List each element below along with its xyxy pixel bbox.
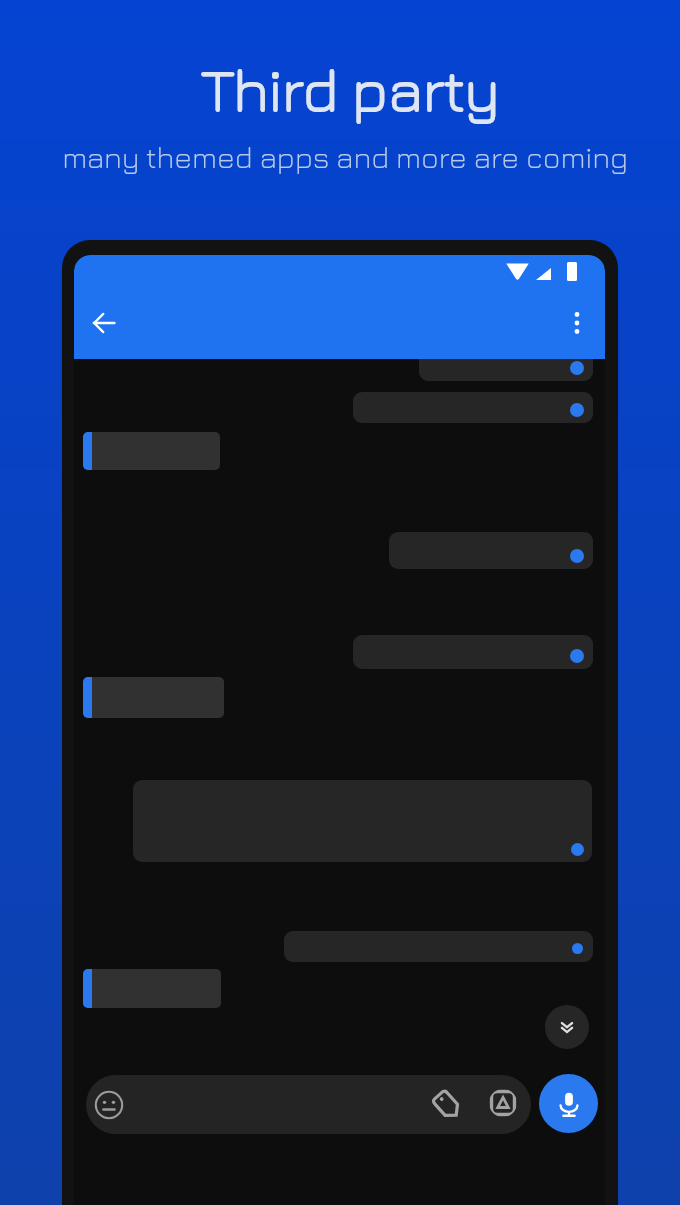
button[interactable]	[419, 340, 593, 381]
button[interactable]	[284, 931, 593, 962]
staticText: Third party	[201, 53, 500, 124]
button[interactable]	[353, 392, 593, 423]
button[interactable]	[83, 432, 220, 470]
button[interactable]: Attach	[431, 1089, 463, 1121]
button[interactable]	[353, 635, 593, 669]
button[interactable]: Voice message	[539, 1074, 598, 1133]
button[interactable]	[83, 677, 224, 718]
button[interactable]	[133, 780, 592, 862]
button[interactable]: Back	[80, 299, 128, 347]
button[interactable]: Emoji	[94, 1090, 124, 1120]
button[interactable]: Scroll to bottom	[545, 1005, 589, 1049]
button[interactable]: Camera	[489, 1089, 517, 1117]
button[interactable]: More options	[555, 301, 599, 345]
button[interactable]	[389, 532, 593, 569]
button[interactable]	[83, 969, 221, 1008]
button[interactable]: Emoji	[86, 1075, 531, 1134]
staticText: many themed apps and more are coming	[62, 139, 628, 174]
